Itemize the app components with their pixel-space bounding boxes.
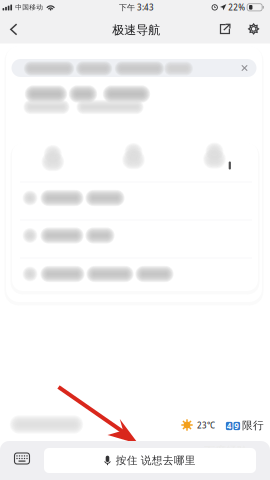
staticText: 22% [228,2,245,13]
button[interactable]: Keyboard [8,447,35,470]
button[interactable]: Share [212,16,237,41]
staticText: 9 [234,421,239,431]
button[interactable]: Back [2,15,26,44]
staticText: 限行 [242,419,264,432]
button[interactable]: 按住 说想去哪里 [44,448,256,473]
staticText: 下午 3:43 [119,2,154,13]
staticText: 百度经验 [204,444,248,457]
button[interactable]: Clear search [236,60,253,76]
staticText: 4 [227,421,232,431]
button[interactable]: Settings [242,17,265,40]
staticText: 23°C [197,420,215,431]
staticText: 按住 说想去哪里 [116,454,196,467]
staticText: 中国移动 [15,3,43,11]
staticText: 极速导航 [112,23,160,37]
